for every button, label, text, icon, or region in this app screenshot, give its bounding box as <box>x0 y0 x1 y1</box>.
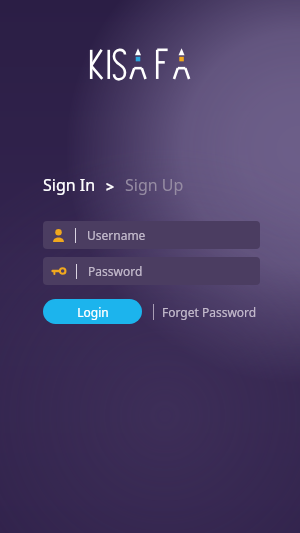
button[interactable]: Sign In <box>43 174 96 196</box>
button[interactable]: Forget Password <box>162 304 257 320</box>
staticText: Sign In <box>43 174 96 196</box>
other: Password <box>52 264 66 278</box>
other: Username <box>52 229 65 242</box>
staticText: > <box>106 177 115 196</box>
other: KISAFA <box>86 39 216 86</box>
staticText: Forget Password <box>162 304 257 320</box>
staticText: Sign Up <box>125 174 184 196</box>
button[interactable]: Login <box>43 299 142 324</box>
button[interactable]: Sign Up <box>125 174 184 196</box>
staticText: Username <box>87 227 146 243</box>
button[interactable]: Password <box>43 257 260 285</box>
button[interactable]: Username <box>43 221 260 249</box>
staticText: Password <box>88 263 143 279</box>
staticText: Login <box>77 304 109 320</box>
